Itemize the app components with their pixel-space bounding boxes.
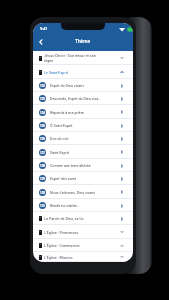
button[interactable]: L'Église - Communion xyxy=(33,239,133,252)
button[interactable]: 130 xyxy=(33,185,133,199)
button[interactable]: L'Église - Mission xyxy=(33,252,133,262)
staticText: Nous t'adorons, Dieu vivant xyxy=(50,190,101,195)
button[interactable]: La Parole de Dieu, sa loi xyxy=(33,212,133,225)
button[interactable]: 124 xyxy=(33,105,133,119)
staticText: Réponds à ma prière xyxy=(50,110,101,115)
staticText: Le Saint-Esprit xyxy=(44,70,101,75)
staticText: Don du ciel xyxy=(50,136,101,141)
staticText: 124 xyxy=(40,111,46,115)
button[interactable]: Jésus-Christ - Son retour et son règne xyxy=(33,51,133,65)
staticText: 123 xyxy=(40,97,46,101)
staticText: Descends, Esprit du Dieu vivant… xyxy=(50,96,101,101)
staticText: 126 xyxy=(40,137,46,141)
button[interactable]: 123 xyxy=(33,92,133,105)
staticText: 128 xyxy=(40,164,46,168)
staticText: Esprit très saint xyxy=(50,176,101,181)
staticText: 122 xyxy=(40,84,46,88)
button[interactable]: L'Église - Promesses xyxy=(33,225,133,239)
button[interactable]: 129 xyxy=(33,172,133,185)
button[interactable]: Le Saint-Esprit xyxy=(33,65,133,79)
staticText: L'Église - Promesses xyxy=(44,230,101,235)
button[interactable]: 127 xyxy=(33,145,133,159)
button[interactable]: 126 xyxy=(33,132,133,145)
button[interactable]: 128 xyxy=(33,159,133,172)
staticText: Comme une terre altérée xyxy=(50,163,101,168)
staticText: 129 xyxy=(40,177,46,181)
staticText: Saint-Esprit xyxy=(50,150,101,155)
staticText: Thème xyxy=(75,38,91,45)
staticText: Ô Saint-Esprit xyxy=(50,123,101,128)
button[interactable]: 131 xyxy=(33,199,133,212)
staticText: Jésus-Christ - Son retour et son règne xyxy=(44,53,101,63)
button[interactable]: 125 xyxy=(33,119,133,132)
staticText: L'Église - Mission xyxy=(44,255,101,260)
staticText: Esprit du Dieu vivant xyxy=(50,83,101,88)
button[interactable]: 122 xyxy=(33,79,133,92)
staticText: 125 xyxy=(40,124,46,128)
button[interactable]: Back xyxy=(35,36,46,47)
staticText: L'Église - Communion xyxy=(44,243,101,248)
staticText: 9:41 xyxy=(40,26,48,31)
staticText: 131 xyxy=(40,204,46,208)
staticText: Rends-toi maître… xyxy=(50,203,101,208)
staticText: La Parole de Dieu, sa loi xyxy=(44,216,101,221)
staticText: 127 xyxy=(40,151,46,155)
staticText: 130 xyxy=(40,191,46,195)
